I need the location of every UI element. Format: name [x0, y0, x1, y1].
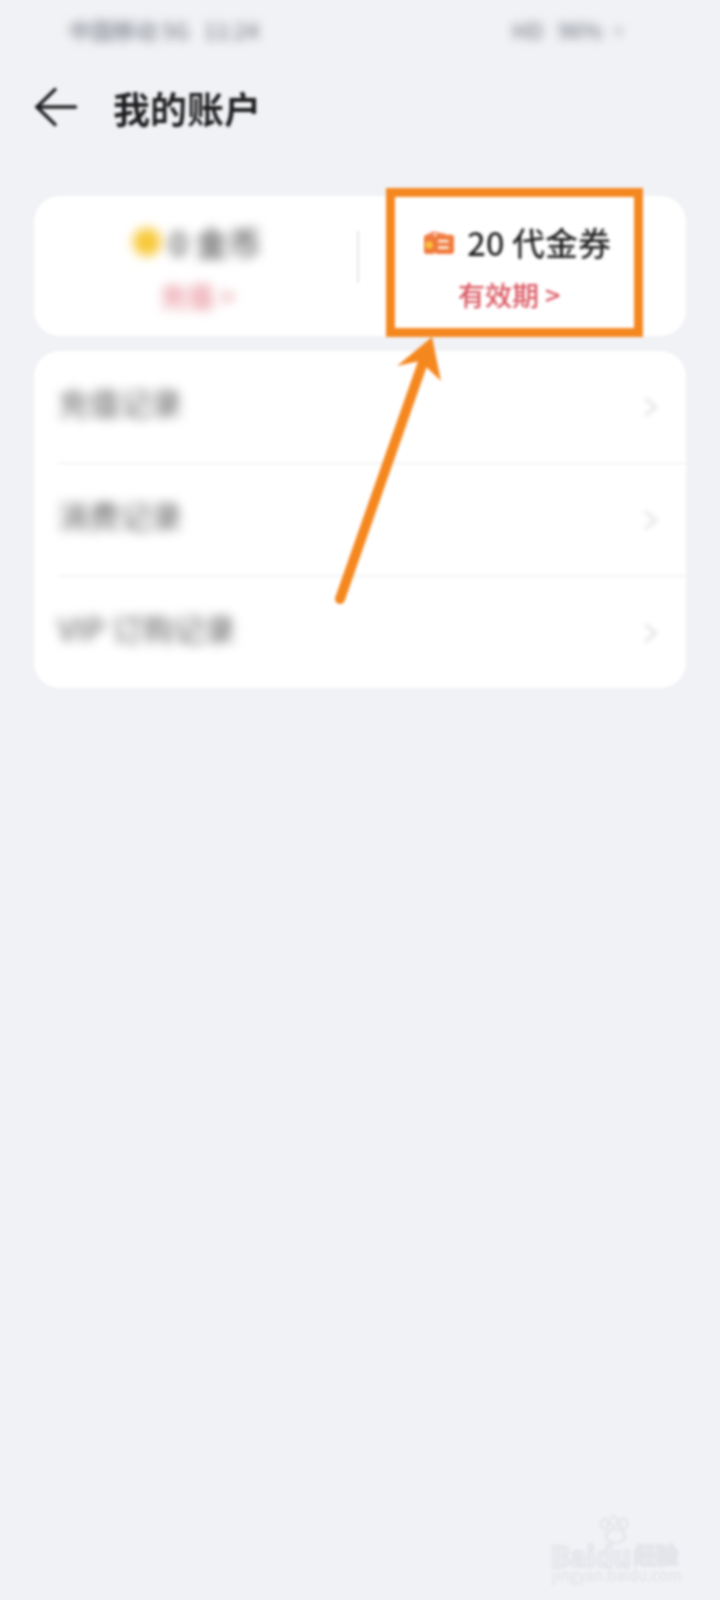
staticText: 20 代金券 — [467, 218, 612, 266]
staticText: VIP 订购记录 — [58, 605, 236, 650]
staticText: HD 96% • — [512, 13, 630, 45]
staticText: 消费记录 — [58, 492, 182, 537]
button[interactable]: 0 金币 — [34, 196, 360, 336]
button[interactable]: 消费记录 — [34, 464, 686, 575]
staticText: 我的账户 — [113, 81, 261, 135]
staticText: 经验 — [634, 1537, 679, 1569]
button[interactable]: 20 代金券 — [361, 196, 686, 336]
staticText: 0 金币 — [169, 218, 262, 266]
button[interactable]: 充值记录 — [34, 351, 686, 462]
staticText: 充值 > — [160, 276, 236, 315]
staticText: 有效期 > — [458, 275, 561, 314]
staticText: Baidu — [551, 1535, 631, 1576]
staticText: 中国移动 5G 11:24 — [69, 13, 260, 45]
button[interactable]: Back — [14, 59, 102, 155]
staticText: 充值记录 — [58, 379, 182, 424]
button[interactable]: VIP 订购记录 — [34, 577, 686, 688]
staticText: jingyan.baidu.com — [552, 1564, 682, 1586]
